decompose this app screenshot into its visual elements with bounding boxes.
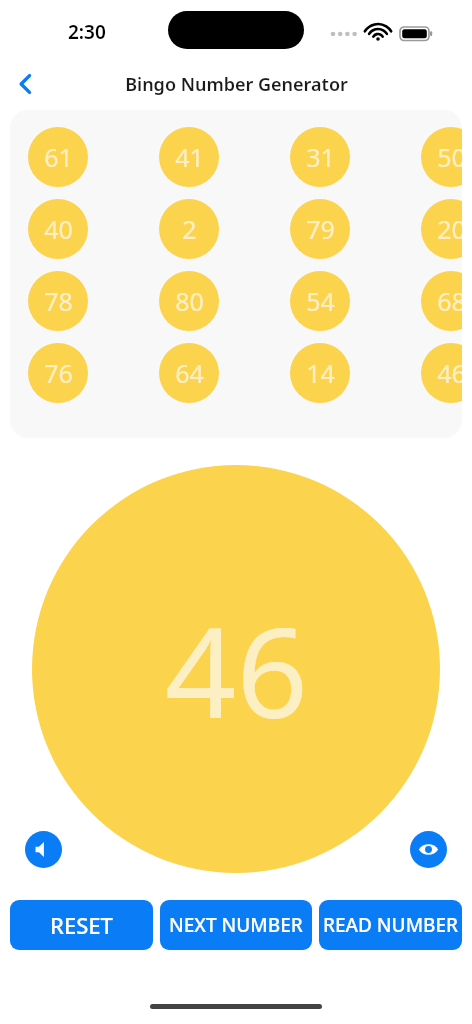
- button[interactable]: 79: [290, 199, 350, 259]
- staticText: Bingo Number Generator: [125, 72, 348, 97]
- staticText: 54: [306, 284, 335, 318]
- button[interactable]: 68: [421, 271, 462, 331]
- button[interactable]: Back: [4, 62, 48, 106]
- staticText: 14: [306, 356, 335, 390]
- button[interactable]: 46: [421, 343, 462, 403]
- button[interactable]: 61: [28, 127, 88, 187]
- button[interactable]: 50: [421, 127, 462, 187]
- button[interactable]: Reveal number: [410, 831, 447, 868]
- staticText: 2: [182, 212, 197, 246]
- button[interactable]: RESET: [10, 900, 153, 950]
- button[interactable]: 14: [290, 343, 350, 403]
- button[interactable]: 54: [290, 271, 350, 331]
- button[interactable]: 40: [28, 199, 88, 259]
- button[interactable]: NEXT NUMBER: [160, 900, 312, 950]
- button[interactable]: 80: [159, 271, 219, 331]
- button[interactable]: 20: [421, 199, 462, 259]
- staticText: 41: [175, 140, 204, 174]
- staticText: 61: [44, 140, 73, 174]
- button[interactable]: 2: [159, 199, 219, 259]
- button[interactable]: 78: [28, 271, 88, 331]
- button[interactable]: Sound: [25, 831, 62, 868]
- staticText: 2:30: [68, 19, 106, 45]
- staticText: 76: [44, 356, 73, 390]
- staticText: 68: [437, 284, 462, 318]
- staticText: 46: [165, 584, 308, 754]
- staticText: 80: [175, 284, 204, 318]
- staticText: 20: [437, 212, 462, 246]
- button[interactable]: 76: [28, 343, 88, 403]
- button[interactable]: 46: [32, 465, 440, 873]
- staticText: 64: [175, 356, 204, 390]
- staticText: 50: [437, 140, 462, 174]
- staticText: 31: [306, 140, 335, 174]
- staticText: NEXT NUMBER: [169, 912, 303, 938]
- staticText: READ NUMBER: [323, 912, 459, 938]
- staticText: RESET: [50, 910, 113, 940]
- staticText: 46: [437, 356, 462, 390]
- button[interactable]: 41: [159, 127, 219, 187]
- button[interactable]: 31: [290, 127, 350, 187]
- staticText: 78: [44, 284, 73, 318]
- button[interactable]: 64: [159, 343, 219, 403]
- staticText: 40: [44, 212, 73, 246]
- button[interactable]: READ NUMBER: [319, 900, 462, 950]
- staticText: 79: [306, 212, 335, 246]
